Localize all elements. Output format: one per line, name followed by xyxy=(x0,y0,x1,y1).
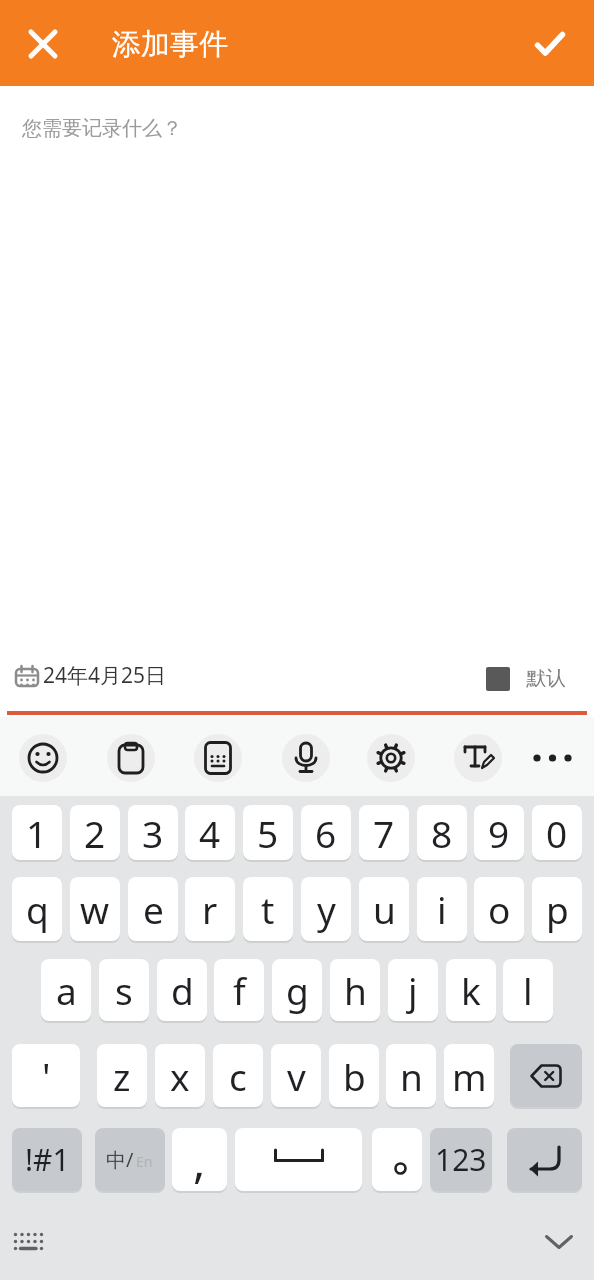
staticText: 2 xyxy=(84,808,106,858)
staticText: x xyxy=(170,1051,190,1101)
button[interactable]: h xyxy=(330,959,380,1021)
staticText: 您需要记录什么？ xyxy=(22,116,182,141)
staticText: m xyxy=(452,1051,487,1101)
button[interactable]: z xyxy=(97,1044,147,1107)
button[interactable] xyxy=(372,1128,422,1191)
staticText: 中/ xyxy=(106,1146,134,1173)
staticText: f xyxy=(233,965,246,1015)
button[interactable]: ' xyxy=(12,1044,80,1107)
button[interactable]: 4 xyxy=(185,805,235,860)
staticText: r xyxy=(202,884,218,934)
staticText: o xyxy=(488,884,511,934)
staticText: 7 xyxy=(373,808,395,858)
button[interactable] xyxy=(528,24,572,64)
button[interactable]: a xyxy=(41,959,91,1021)
button[interactable]: 6 xyxy=(301,805,351,860)
staticText: 4 xyxy=(199,808,221,858)
staticText: s xyxy=(115,965,133,1015)
button[interactable] xyxy=(107,734,155,782)
staticText: a xyxy=(56,965,77,1015)
button[interactable]: c xyxy=(213,1044,263,1107)
button[interactable]: 中/ xyxy=(95,1128,165,1191)
staticText: 1 xyxy=(26,808,48,858)
staticText: e xyxy=(143,884,164,934)
staticText: u xyxy=(373,884,396,934)
button[interactable] xyxy=(454,734,502,782)
button[interactable]: g xyxy=(272,959,322,1021)
button[interactable]: , xyxy=(172,1128,227,1191)
button[interactable]: 7 xyxy=(359,805,409,860)
staticText: 8 xyxy=(431,808,453,858)
button[interactable]: 3 xyxy=(128,805,178,860)
staticText: n xyxy=(400,1051,423,1101)
button[interactable]: 9 xyxy=(474,805,524,860)
button[interactable] xyxy=(367,734,415,782)
button[interactable] xyxy=(27,28,59,60)
staticText: b xyxy=(343,1051,366,1101)
button[interactable]: f xyxy=(214,959,264,1021)
button[interactable] xyxy=(235,1128,362,1191)
button[interactable]: u xyxy=(359,877,409,941)
staticText: ' xyxy=(42,1050,51,1102)
button[interactable] xyxy=(4,1224,52,1260)
button[interactable]: s xyxy=(99,959,149,1021)
staticText: 默认 xyxy=(526,666,566,691)
button[interactable]: i xyxy=(417,877,467,941)
staticText: v xyxy=(287,1051,306,1101)
staticText: d xyxy=(171,965,194,1015)
button[interactable]: y xyxy=(301,877,351,941)
button[interactable] xyxy=(529,734,577,782)
button[interactable] xyxy=(510,1044,582,1107)
staticText: q xyxy=(26,884,49,934)
button[interactable]: t xyxy=(243,877,293,941)
button[interactable] xyxy=(507,1128,582,1191)
button[interactable]: v xyxy=(271,1044,321,1107)
button[interactable]: 0 xyxy=(532,805,582,860)
button[interactable]: 2 xyxy=(70,805,120,860)
button[interactable] xyxy=(537,1222,581,1262)
button[interactable]: j xyxy=(388,959,438,1021)
button[interactable]: r xyxy=(185,877,235,941)
staticText: 5 xyxy=(257,808,279,858)
button[interactable] xyxy=(282,734,330,782)
button[interactable]: 5 xyxy=(243,805,293,860)
staticText: l xyxy=(523,965,533,1015)
staticText: y xyxy=(317,884,336,934)
button[interactable]: 123 xyxy=(430,1128,492,1191)
staticText: w xyxy=(80,884,110,934)
button[interactable]: 默认 xyxy=(460,655,594,705)
button[interactable]: l xyxy=(503,959,553,1021)
staticText: 6 xyxy=(315,808,337,858)
button[interactable]: d xyxy=(157,959,207,1021)
staticText: En xyxy=(136,1152,153,1171)
button[interactable] xyxy=(19,734,67,782)
button[interactable]: 24年4月25日 xyxy=(0,655,400,705)
button[interactable]: 1 xyxy=(12,805,62,860)
button[interactable]: p xyxy=(532,877,582,941)
staticText: , xyxy=(193,1129,206,1191)
button[interactable]: q xyxy=(12,877,62,941)
staticText: z xyxy=(113,1051,131,1101)
button[interactable]: n xyxy=(386,1044,436,1107)
staticText: 123 xyxy=(435,1139,487,1180)
staticText: 0 xyxy=(546,808,568,858)
button[interactable]: m xyxy=(444,1044,494,1107)
staticText: 3 xyxy=(142,808,164,858)
staticText: t xyxy=(261,884,275,934)
staticText: 9 xyxy=(488,808,510,858)
staticText: j xyxy=(408,965,418,1015)
button[interactable]: !#1 xyxy=(12,1128,82,1191)
button[interactable]: k xyxy=(446,959,496,1021)
button[interactable]: b xyxy=(329,1044,379,1107)
staticText: k xyxy=(461,965,481,1015)
button[interactable]: x xyxy=(155,1044,205,1107)
staticText: !#1 xyxy=(25,1139,70,1180)
staticText: i xyxy=(437,884,447,934)
staticText: g xyxy=(286,965,309,1015)
button[interactable]: w xyxy=(70,877,120,941)
button[interactable] xyxy=(194,734,242,782)
button[interactable]: o xyxy=(474,877,524,941)
button[interactable]: e xyxy=(128,877,178,941)
button[interactable]: 8 xyxy=(417,805,467,860)
staticText: c xyxy=(229,1051,247,1101)
